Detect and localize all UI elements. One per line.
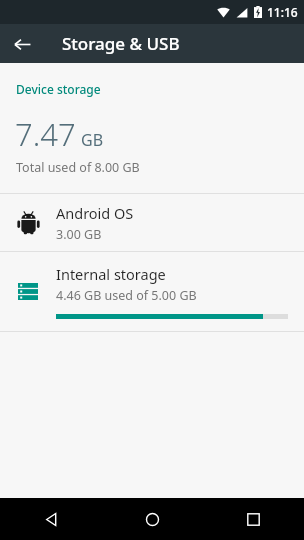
staticText: 4.46 GB used of 5.00 GB — [56, 287, 197, 304]
button[interactable]: Internal storage — [0, 252, 304, 331]
staticText: GB — [81, 129, 104, 151]
staticText: 7.47 — [15, 113, 76, 155]
button[interactable]: Android OS — [0, 194, 304, 251]
staticText: Storage & USB — [62, 32, 180, 55]
button[interactable]: Back — [0, 498, 102, 540]
staticText: 3.00 GB — [56, 226, 102, 243]
button[interactable]: Home — [102, 498, 203, 540]
button[interactable]: Back — [8, 30, 36, 58]
staticText: 11:16 — [267, 4, 298, 20]
button[interactable]: Recent apps — [203, 498, 304, 540]
staticText: Internal storage — [56, 264, 166, 284]
staticText: Device storage — [16, 81, 101, 97]
staticText: Total used of 8.00 GB — [16, 159, 140, 176]
staticText: Android OS — [56, 203, 134, 223]
